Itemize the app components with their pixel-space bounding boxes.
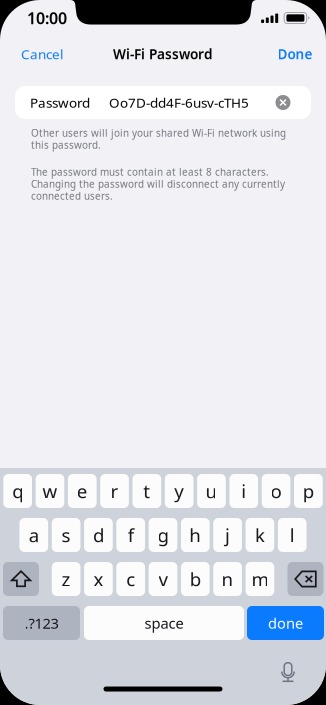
- staticText: i: [241, 479, 246, 503]
- staticText: c: [126, 567, 135, 591]
- button[interactable]: t: [132, 474, 161, 508]
- button[interactable]: done: [247, 606, 324, 640]
- staticText: x: [93, 567, 103, 591]
- staticText: u: [205, 479, 217, 503]
- button[interactable]: g: [149, 518, 177, 552]
- button[interactable]: Cancel: [15, 40, 69, 68]
- button[interactable]: j: [213, 518, 242, 552]
- staticText: 10:00: [27, 7, 67, 29]
- staticText: y: [174, 479, 184, 503]
- button[interactable]: w: [36, 474, 64, 508]
- staticText: p: [303, 479, 314, 503]
- button[interactable]: space: [84, 606, 244, 640]
- button[interactable]: u: [197, 474, 226, 508]
- staticText: o: [271, 479, 282, 503]
- staticText: d: [93, 523, 104, 547]
- staticText: r: [110, 479, 118, 503]
- staticText: w: [42, 479, 57, 503]
- button[interactable]: Done: [271, 40, 318, 68]
- button[interactable]: a: [19, 518, 48, 552]
- button[interactable]: k: [246, 518, 274, 552]
- staticText: g: [157, 523, 168, 547]
- button[interactable]: s: [52, 518, 80, 552]
- staticText: Cancel: [21, 45, 63, 63]
- staticText: Wi-Fi Password: [113, 45, 213, 63]
- button[interactable]: .?123: [3, 606, 80, 640]
- button[interactable]: i: [229, 474, 258, 508]
- button[interactable]: e: [68, 474, 97, 508]
- staticText: b: [190, 567, 201, 591]
- staticText: n: [222, 567, 234, 591]
- button[interactable]: x: [84, 562, 113, 596]
- staticText: Password: [30, 93, 90, 112]
- button[interactable]: f: [116, 518, 145, 552]
- staticText: k: [255, 523, 265, 547]
- staticText: j: [225, 523, 230, 547]
- staticText: a: [29, 523, 39, 547]
- staticText: s: [62, 523, 71, 547]
- staticText: Changing the password will disconnect an…: [31, 177, 285, 191]
- button[interactable]: b: [181, 562, 210, 596]
- staticText: The password must contain at least 8 cha…: [31, 165, 269, 179]
- staticText: space: [144, 613, 183, 633]
- button[interactable]: m: [246, 562, 274, 596]
- staticText: e: [77, 479, 88, 503]
- staticText: .?123: [24, 613, 58, 633]
- staticText: Other users will join your shared Wi-Fi …: [31, 126, 286, 140]
- button[interactable]: Delete: [287, 562, 323, 596]
- staticText: q: [12, 479, 23, 503]
- button[interactable]: Dictate: [279, 661, 297, 682]
- staticText: v: [158, 567, 167, 591]
- button[interactable]: n: [213, 562, 242, 596]
- button[interactable]: Shift: [3, 562, 39, 596]
- button[interactable]: y: [165, 474, 193, 508]
- staticText: l: [290, 523, 295, 547]
- button[interactable]: p: [294, 474, 323, 508]
- button[interactable]: o: [262, 474, 290, 508]
- staticText: h: [189, 523, 201, 547]
- button[interactable]: v: [149, 562, 177, 596]
- staticText: m: [251, 567, 268, 591]
- staticText: Oo7D-dd4F-6usv-cTH5: [109, 93, 249, 112]
- staticText: Done: [277, 45, 312, 63]
- button[interactable]: h: [181, 518, 210, 552]
- button[interactable]: l: [278, 518, 307, 552]
- button[interactable]: q: [3, 474, 32, 508]
- button[interactable]: z: [52, 562, 80, 596]
- staticText: z: [62, 567, 71, 591]
- button[interactable]: r: [100, 474, 129, 508]
- button[interactable]: c: [116, 562, 145, 596]
- staticText: f: [128, 523, 134, 547]
- staticText: this password.: [31, 138, 101, 152]
- staticText: done: [268, 613, 303, 633]
- button[interactable]: Clear text: [275, 95, 290, 110]
- button[interactable]: d: [84, 518, 113, 552]
- staticText: t: [143, 479, 150, 503]
- staticText: connected users.: [31, 189, 113, 203]
